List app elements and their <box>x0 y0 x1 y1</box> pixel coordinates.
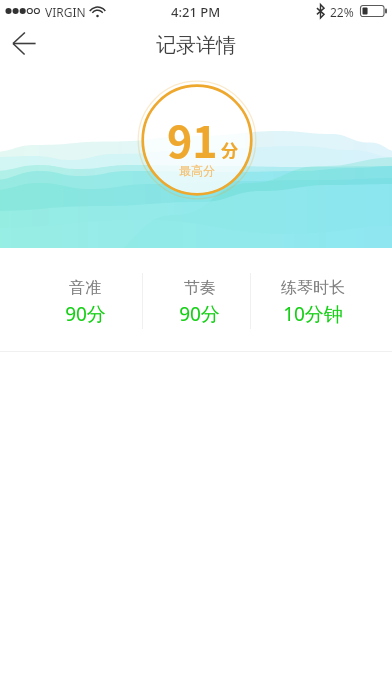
staticText: 90分 <box>65 301 106 327</box>
staticText: 音准 <box>69 278 101 298</box>
staticText: 记录详情 <box>156 33 236 58</box>
staticText: 分 <box>221 137 238 162</box>
staticText: 最高分 <box>179 163 215 178</box>
staticText: 91 <box>167 108 218 170</box>
button[interactable]: Back <box>0 20 50 64</box>
staticText: 22% <box>330 4 354 20</box>
staticText: 90分 <box>179 301 220 327</box>
staticText: 4:21 PM <box>171 3 221 21</box>
staticText: 练琴时长 <box>281 278 345 298</box>
staticText: VIRGIN <box>45 4 86 20</box>
staticText: 10分钟 <box>283 301 343 327</box>
staticText: 节奏 <box>184 278 216 298</box>
button[interactable]: 练琴时长 <box>256 268 369 334</box>
button[interactable]: 音准 <box>28 268 142 334</box>
button[interactable]: 节奏 <box>143 268 256 334</box>
